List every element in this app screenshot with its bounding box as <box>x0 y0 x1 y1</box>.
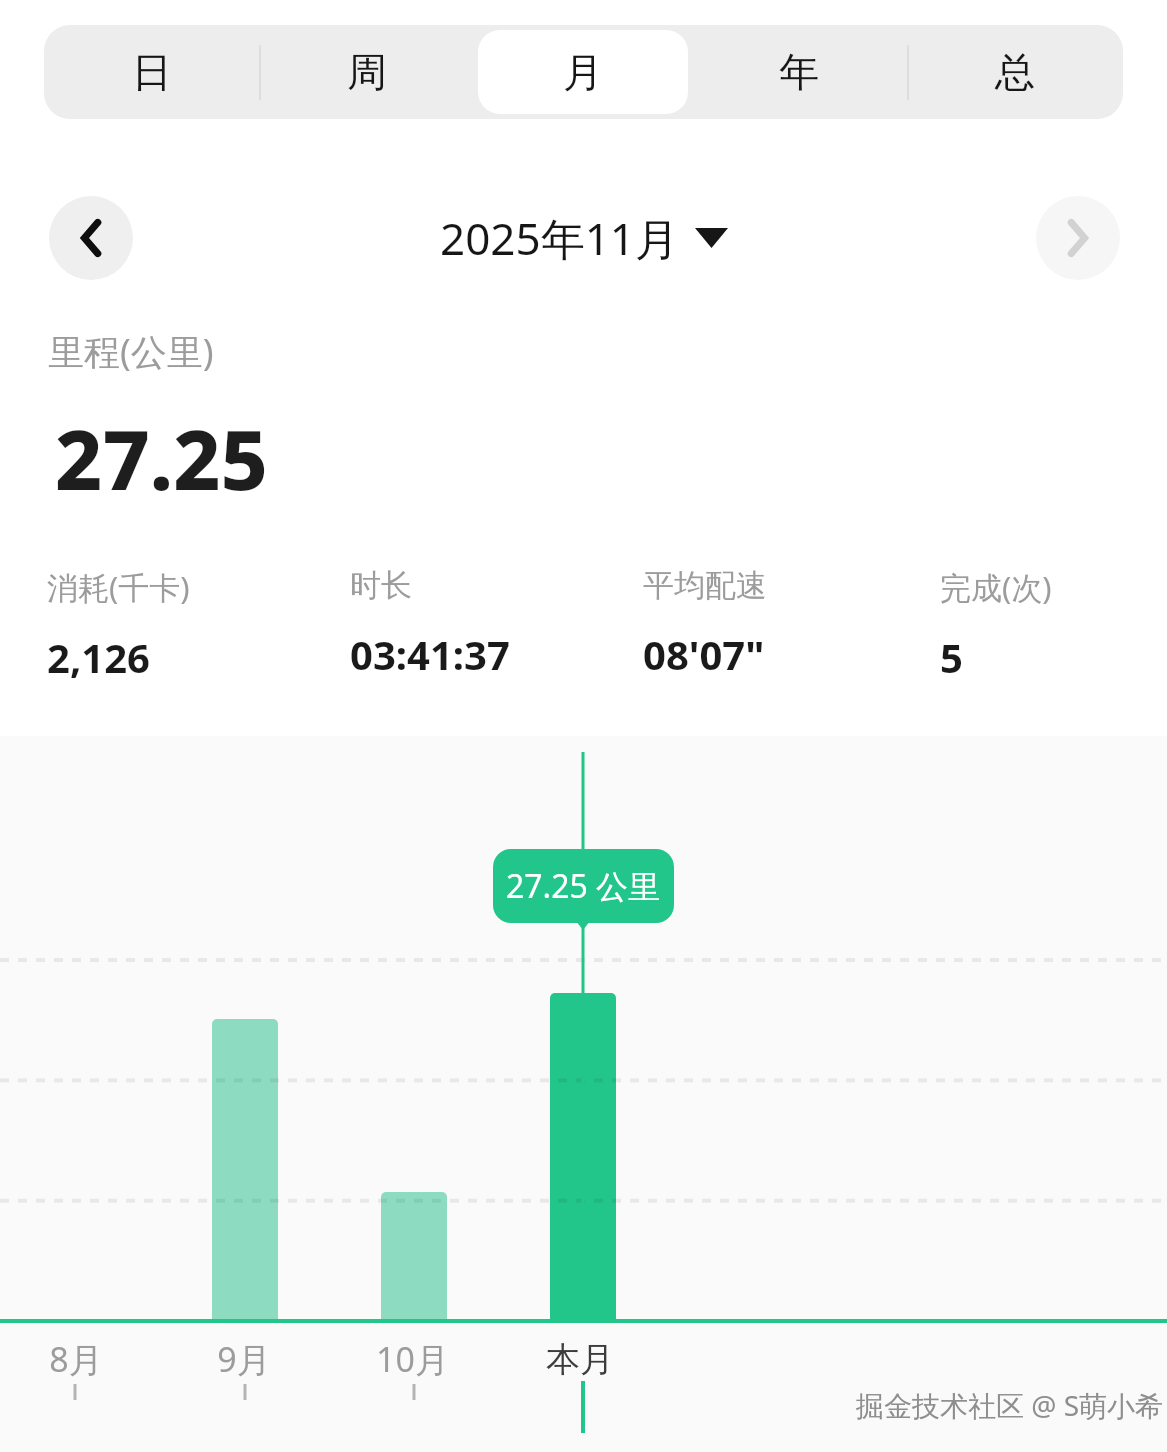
staticText: 总 <box>995 47 1035 97</box>
staticText: 2025年11月 <box>440 208 680 268</box>
staticText: 10月 <box>376 1336 449 1382</box>
button[interactable]: 总 <box>910 30 1120 114</box>
button[interactable]: 时长 <box>350 566 600 681</box>
staticText: 时长 <box>350 566 412 605</box>
button[interactable]: 消耗(千卡) <box>47 566 297 684</box>
staticText: 月 <box>563 47 603 97</box>
button[interactable]: 10月 <box>342 1329 482 1389</box>
button[interactable]: 9月 <box>174 1329 314 1389</box>
staticText: 5 <box>940 630 963 684</box>
button[interactable]: 27.25 公里 <box>493 849 674 923</box>
button[interactable]: 完成(次) <box>940 566 1167 684</box>
staticText: 27.25 <box>55 402 268 514</box>
staticText: 03:41:37 <box>350 627 510 681</box>
button[interactable]: 月 <box>478 30 688 114</box>
staticText: 9月 <box>217 1336 271 1382</box>
staticText: 消耗(千卡) <box>47 566 190 608</box>
button[interactable]: 年 <box>694 30 904 114</box>
staticText: 年 <box>779 47 819 97</box>
button[interactable]: 2025年11月 <box>0 198 1167 278</box>
staticText: 本月 <box>546 1338 614 1381</box>
button[interactable]: Previous month <box>49 196 133 280</box>
staticText: 周 <box>347 47 387 97</box>
button[interactable]: 日 <box>47 30 256 114</box>
staticText: 8月 <box>49 1336 103 1382</box>
staticText: 完成(次) <box>940 566 1052 608</box>
staticText: 27.25 公里 <box>506 864 661 908</box>
staticText: 里程(公里) <box>48 327 214 376</box>
button[interactable]: 周 <box>262 30 472 114</box>
staticText: 08'07" <box>643 627 765 681</box>
button[interactable]: 8月 <box>6 1329 146 1389</box>
staticText: 平均配速 <box>643 566 767 605</box>
button[interactable]: 本月 <box>510 1329 650 1389</box>
staticText: 2,126 <box>47 630 150 684</box>
button[interactable]: 平均配速 <box>643 566 893 681</box>
button[interactable]: Next month <box>1036 196 1120 280</box>
staticText: 日 <box>132 47 172 97</box>
staticText: 掘金技术社区 @ S萌小希 <box>856 1386 1164 1424</box>
